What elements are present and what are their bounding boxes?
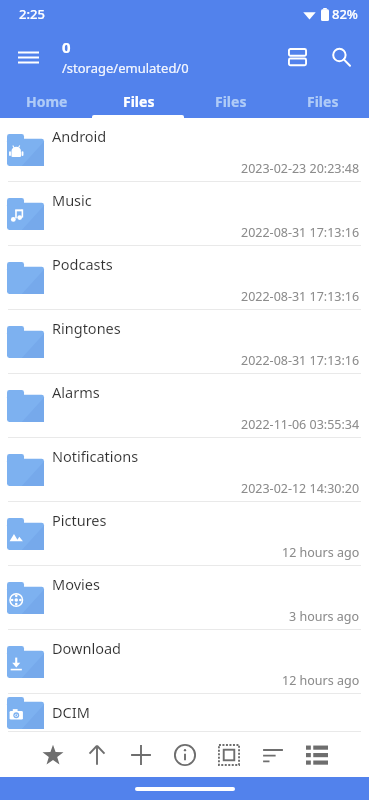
button[interactable]: Podcasts	[0, 246, 369, 310]
button[interactable]: View mode	[295, 733, 339, 777]
button[interactable]: Home	[0, 85, 93, 118]
button[interactable]: Split screen	[275, 35, 319, 79]
button[interactable]: Ringtones	[0, 310, 369, 374]
staticText: Files	[307, 92, 339, 111]
button[interactable]: Menu	[6, 35, 50, 79]
button[interactable]: Alarms	[0, 374, 369, 438]
button[interactable]: DCIM	[0, 694, 369, 732]
button[interactable]: Pictures	[0, 502, 369, 566]
staticText: Ringtones	[52, 318, 121, 338]
staticText: Download	[52, 638, 121, 658]
button[interactable]: Select all	[207, 733, 251, 777]
button[interactable]: Sort	[251, 733, 295, 777]
button[interactable]: Favorite	[31, 733, 75, 777]
staticText: Pictures	[52, 510, 107, 530]
staticText: Notifications	[52, 446, 139, 466]
button[interactable]: Notifications	[0, 438, 369, 502]
staticText: Files	[215, 92, 247, 111]
button[interactable]: Files	[277, 85, 369, 118]
button[interactable]: Download	[0, 630, 369, 694]
button[interactable]: Add	[119, 733, 163, 777]
staticText: 2022-11-06 03:55:34	[241, 416, 360, 433]
button[interactable]: Movies	[0, 566, 369, 630]
staticText: Music	[52, 190, 92, 210]
staticText: Files	[123, 92, 155, 111]
button[interactable]: Go up	[75, 733, 119, 777]
staticText: 2023-02-23 20:23:48	[241, 160, 360, 177]
staticText: 82%	[332, 5, 358, 23]
button[interactable]: Search	[319, 35, 363, 79]
staticText: 12 hours ago	[282, 544, 360, 561]
staticText: DCIM	[52, 702, 90, 722]
staticText: 2022-08-31 17:13:16	[241, 224, 360, 241]
staticText: /storage/emulated/0	[62, 59, 189, 77]
staticText: Alarms	[52, 382, 100, 402]
staticText: Android	[52, 126, 107, 146]
button[interactable]: Music	[0, 182, 369, 246]
button[interactable]: Files	[93, 85, 185, 118]
staticText: Movies	[52, 574, 100, 594]
button[interactable]: Info	[163, 733, 207, 777]
button[interactable]: Files	[185, 85, 277, 118]
staticText: 0	[62, 37, 71, 57]
staticText: 2023-02-12 14:30:20	[241, 480, 360, 497]
staticText: 12 hours ago	[282, 672, 360, 689]
staticText: 2022-08-31 17:13:16	[241, 352, 360, 369]
button[interactable]: Android	[0, 118, 369, 182]
staticText: 2022-08-31 17:13:16	[241, 288, 360, 305]
staticText: Podcasts	[52, 254, 113, 274]
staticText: 2:25	[19, 5, 45, 23]
staticText: 3 hours ago	[289, 608, 360, 625]
staticText: Home	[26, 92, 68, 111]
